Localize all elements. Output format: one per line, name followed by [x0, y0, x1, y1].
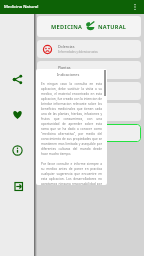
button[interactable]: MEDICINA — [37, 16, 141, 37]
staticText: Te e infusiones naturales — [58, 92, 89, 96]
staticText: Medicina Natural — [4, 4, 39, 10]
button[interactable]: Information — [6, 139, 28, 161]
staticText: En ningun caso la consulta en esta aplic… — [41, 82, 102, 185]
staticText: Indicaciones — [57, 72, 80, 77]
button[interactable]: Dolencias — [37, 40, 141, 58]
button[interactable]: Share — [6, 68, 28, 90]
button[interactable]: Favoritos — [37, 124, 141, 142]
staticText: Favoritos — [58, 128, 74, 133]
staticText: Plantas medicinales — [58, 71, 83, 75]
button[interactable]: Frutas — [37, 103, 141, 121]
staticText: Tus recetas guardadas — [58, 134, 86, 138]
staticText: Frutas — [58, 107, 69, 112]
staticText: Frutas y sus beneficios — [58, 113, 86, 117]
staticText: Infusiones — [58, 86, 76, 91]
staticText: Enfermedades y dolencias varias — [58, 50, 98, 54]
button[interactable]: Plantas — [37, 61, 141, 79]
staticText: Dolencias — [58, 44, 75, 49]
button[interactable]: More options — [130, 2, 140, 12]
staticText: Plantas — [58, 65, 71, 70]
button[interactable]: Exit — [7, 175, 29, 197]
button[interactable]: Infusiones — [37, 82, 141, 100]
staticText: MEDICINA — [51, 23, 83, 31]
staticText: NATURAL — [98, 23, 127, 31]
button[interactable]: Favorites — [6, 103, 28, 125]
